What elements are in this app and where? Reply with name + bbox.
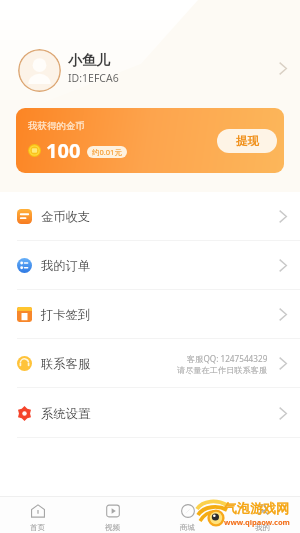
staticText: 我获得的金币	[28, 120, 85, 132]
staticText: www.qipaow.com	[224, 517, 290, 527]
other: 商城	[181, 504, 195, 518]
other: 视频	[106, 504, 120, 518]
button[interactable]: 我的	[225, 497, 300, 533]
staticText: 小鱼儿	[68, 52, 110, 70]
button[interactable]: 打卡签到	[0, 290, 300, 339]
staticText: 首页	[30, 523, 45, 532]
button[interactable]: 金币收支	[0, 192, 300, 241]
staticText: 客服QQ: 1247544329	[187, 353, 268, 364]
staticText: 提现	[236, 134, 259, 148]
button[interactable]: 系统设置	[0, 388, 300, 438]
staticText: 商城	[180, 523, 195, 532]
other: 首页	[31, 504, 45, 518]
staticText: 系统设置	[41, 406, 91, 421]
other: 我的	[256, 504, 270, 518]
staticText: 约0.01元	[92, 147, 122, 157]
staticText: 气泡游戏网	[224, 500, 289, 516]
button[interactable]: 提现	[217, 129, 277, 153]
staticText: 联系客服	[41, 356, 91, 371]
button[interactable]: 联系客服	[0, 339, 300, 388]
button[interactable]: 商城	[150, 497, 225, 533]
staticText: 我的	[255, 523, 270, 532]
staticText: 我的订单	[41, 258, 91, 273]
button[interactable]: 视频	[75, 497, 150, 533]
button[interactable]: 我获得的金币	[16, 108, 284, 173]
staticText: 打卡签到	[41, 307, 91, 322]
button[interactable]: 小鱼儿	[0, 43, 300, 93]
staticText: 100	[46, 137, 81, 164]
staticText: 金币收支	[41, 209, 91, 224]
staticText: 请尽量在工作日联系客服	[177, 365, 268, 375]
staticText: 视频	[105, 523, 120, 532]
button[interactable]: 首页	[0, 497, 75, 533]
staticText: ID:1EFCA6	[68, 71, 119, 85]
button[interactable]: 我的订单	[0, 241, 300, 290]
